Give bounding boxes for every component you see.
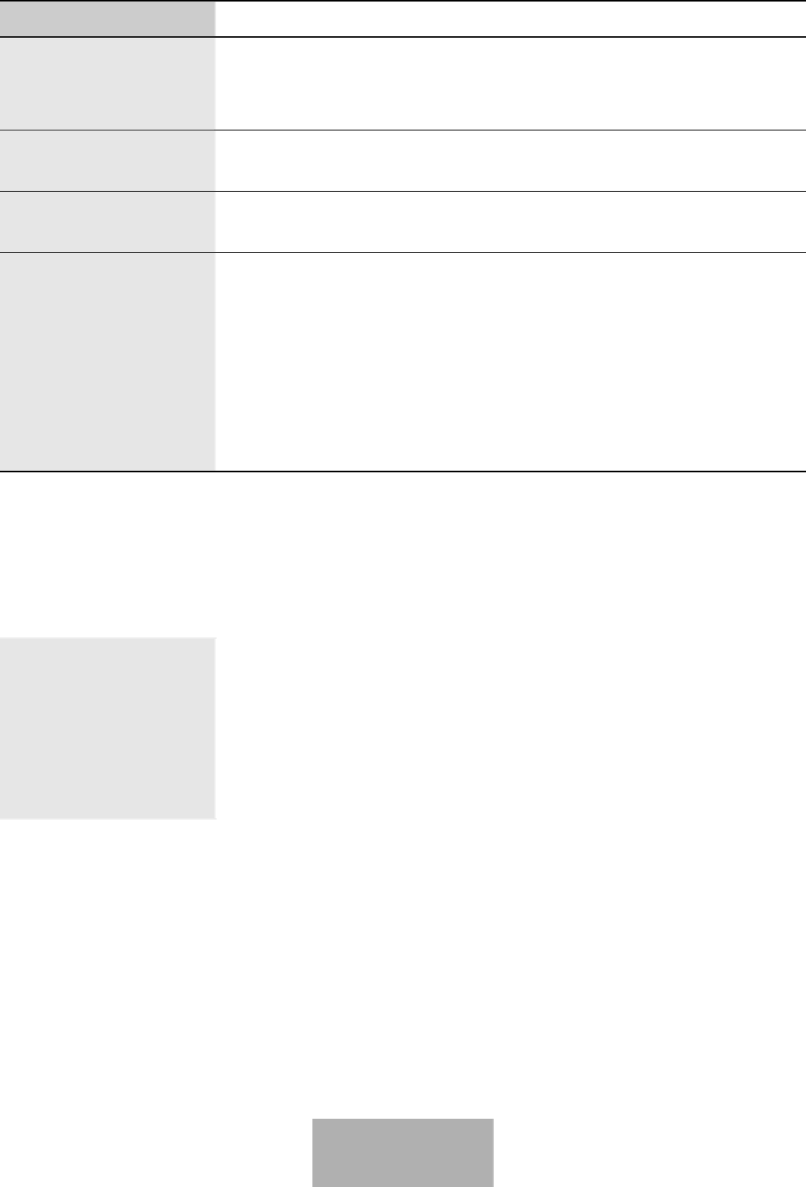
button[interactable]: Infobox row 1 (0, 38, 806, 129)
button[interactable]: Infobox row 2 (0, 131, 806, 191)
button[interactable]: Infobox header (0, 0, 806, 36)
button[interactable]: Infobox row 4 (0, 253, 806, 471)
button[interactable]: Infobox row 3 (0, 192, 806, 252)
